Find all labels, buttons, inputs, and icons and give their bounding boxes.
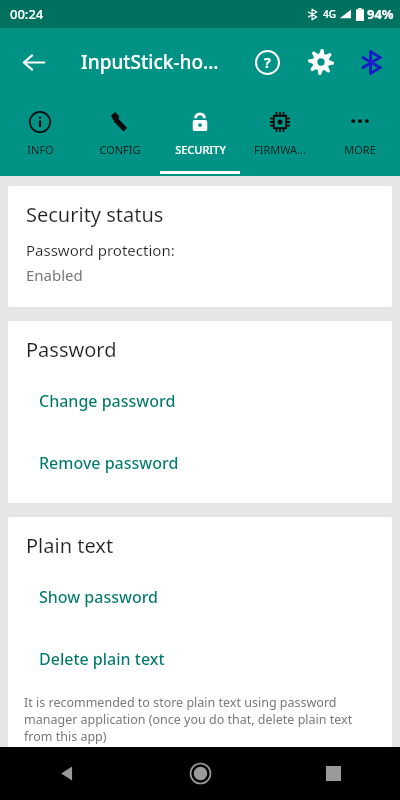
staticText: MORE	[344, 142, 376, 157]
button[interactable]: Settings	[300, 41, 342, 83]
button[interactable]: Show password	[8, 566, 392, 628]
staticText: It is recommended to store plain text us…	[24, 694, 378, 745]
button[interactable]: Delete plain text	[8, 628, 392, 690]
button[interactable]: FIRMWA...	[240, 95, 320, 173]
staticText: InputStick-ho...	[81, 49, 219, 75]
staticText: Enabled	[26, 265, 83, 285]
button[interactable]: Remove password	[8, 432, 392, 494]
button[interactable]: Recents	[267, 747, 400, 800]
button[interactable]: Change password	[8, 370, 392, 432]
staticText: FIRMWA...	[254, 142, 306, 157]
staticText: Remove password	[39, 452, 179, 474]
staticText: 00:24	[10, 5, 44, 23]
button[interactable]: SECURITY	[160, 95, 240, 173]
staticText: SECURITY	[175, 142, 226, 157]
staticText: INFO	[27, 142, 54, 157]
staticText: Change password	[39, 390, 176, 412]
staticText: Security status	[26, 201, 164, 228]
staticText: Password protection:	[26, 240, 175, 260]
staticText: Show password	[39, 586, 159, 608]
staticText: CONFIG	[99, 142, 141, 157]
button[interactable]: MORE	[320, 95, 400, 173]
button[interactable]: Help	[246, 41, 288, 83]
staticText: Delete plain text	[39, 648, 165, 670]
staticText: 94%	[367, 5, 394, 23]
staticText: 4G	[323, 7, 336, 21]
button[interactable]: INFO	[0, 95, 80, 173]
staticText: Plain text	[26, 532, 114, 559]
staticText: Password	[26, 336, 117, 363]
button[interactable]: Bluetooth	[350, 41, 392, 83]
button[interactable]: Back	[12, 41, 54, 83]
button[interactable]: Back	[0, 747, 134, 800]
staticText: ?	[264, 53, 271, 72]
button[interactable]: CONFIG	[80, 95, 160, 173]
button[interactable]: Home	[134, 747, 267, 800]
